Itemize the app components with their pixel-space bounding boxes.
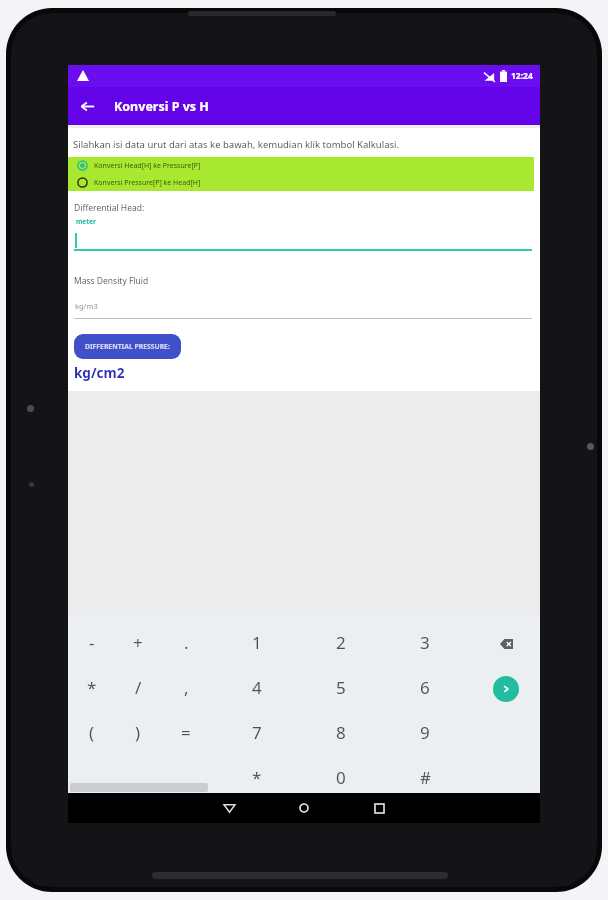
- staticText: 9: [420, 721, 430, 744]
- staticText: 2: [336, 631, 346, 654]
- button[interactable]: DIFFERENTIAL PRESSURE:: [74, 334, 181, 359]
- button[interactable]: 9: [405, 712, 445, 752]
- button[interactable]: Home: [286, 793, 322, 823]
- staticText: kg/cm2: [74, 364, 125, 382]
- button[interactable]: 1: [237, 622, 277, 662]
- button[interactable]: Enter: [493, 676, 519, 702]
- staticText: -: [89, 631, 95, 654]
- staticText: /: [135, 676, 142, 699]
- button[interactable]: Konversi Pressure[P] ke Head[H]: [68, 174, 534, 191]
- staticText: Konversi P vs H: [114, 98, 209, 115]
- button[interactable]: ,: [166, 667, 206, 707]
- button[interactable]: #: [405, 757, 445, 797]
- button[interactable]: Recents: [361, 793, 397, 823]
- button[interactable]: Konversi Head[H] ke Pressure[P]: [68, 157, 534, 174]
- button[interactable]: 5: [321, 667, 361, 707]
- button[interactable]: *: [72, 667, 112, 707]
- staticText: DIFFERENTIAL PRESSURE:: [85, 342, 170, 351]
- staticText: 1: [252, 631, 262, 654]
- button[interactable]: 2: [321, 622, 361, 662]
- staticText: ): [135, 721, 141, 744]
- staticText: 12:24: [511, 70, 533, 82]
- button[interactable]: Back: [68, 87, 106, 125]
- button[interactable]: 0: [321, 757, 361, 797]
- button[interactable]: 3: [405, 622, 445, 662]
- button[interactable]: Back: [211, 793, 247, 823]
- button[interactable]: 6: [405, 667, 445, 707]
- staticText: *: [87, 676, 97, 699]
- button[interactable]: 4: [237, 667, 277, 707]
- staticText: #: [420, 766, 431, 789]
- staticText: Mass Density Fluid: [74, 275, 149, 287]
- button[interactable]: 7: [237, 712, 277, 752]
- staticText: Konversi Head[H] ke Pressure[P]: [94, 161, 201, 171]
- staticText: ,: [184, 676, 189, 699]
- staticText: 4: [252, 676, 262, 699]
- staticText: =: [181, 721, 191, 744]
- button[interactable]: +: [118, 622, 158, 662]
- staticText: 7: [252, 721, 262, 744]
- button[interactable]: /: [118, 667, 158, 707]
- staticText: meter: [76, 217, 96, 226]
- staticText: 3: [420, 631, 430, 654]
- button[interactable]: (: [72, 712, 112, 752]
- staticText: 6: [420, 676, 430, 699]
- staticText: +: [133, 631, 143, 654]
- staticText: 5: [336, 676, 346, 699]
- staticText: Silahkan isi data urut dari atas ke bawa…: [73, 138, 400, 151]
- staticText: *: [252, 766, 262, 789]
- staticText: 8: [336, 721, 346, 744]
- staticText: Konversi Pressure[P] ke Head[H]: [94, 178, 201, 188]
- staticText: kg/m3: [75, 301, 98, 311]
- button[interactable]: ): [118, 712, 158, 752]
- staticText: 0: [336, 766, 346, 789]
- button[interactable]: .: [166, 622, 206, 662]
- button[interactable]: -: [72, 622, 112, 662]
- staticText: (: [89, 721, 95, 744]
- staticText: .: [184, 631, 189, 654]
- button[interactable]: 8: [321, 712, 361, 752]
- staticText: Differential Head:: [74, 202, 145, 214]
- button[interactable]: =: [166, 712, 206, 752]
- button[interactable]: Delete: [488, 626, 524, 662]
- button[interactable]: *: [237, 757, 277, 797]
